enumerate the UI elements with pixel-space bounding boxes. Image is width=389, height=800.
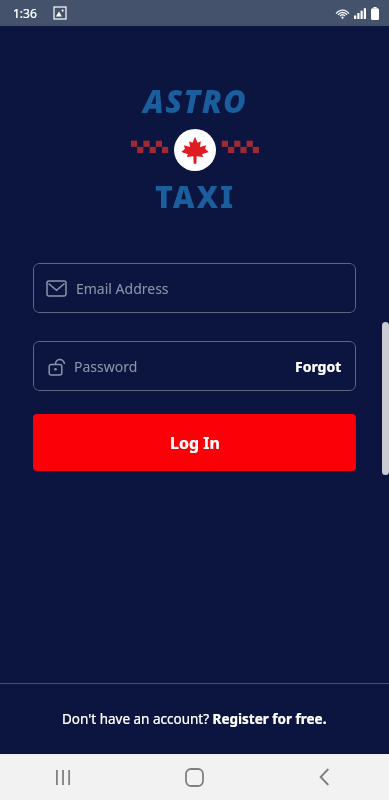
- button[interactable]: Recent apps: [0, 754, 129, 800]
- button[interactable]: Don't have an account? Register for free…: [0, 684, 389, 754]
- staticText: Password: [74, 357, 138, 376]
- staticText: ASTRO: [143, 80, 248, 122]
- button[interactable]: Back: [259, 754, 389, 800]
- button[interactable]: Forgot: [295, 357, 342, 376]
- button[interactable]: Home: [129, 754, 259, 800]
- staticText: TAXI: [155, 176, 236, 217]
- button[interactable]: Password: [33, 341, 356, 391]
- staticText: Email Address: [76, 279, 169, 298]
- staticText: Don't have an account? Register for free…: [62, 710, 327, 728]
- staticText: 1:36: [13, 5, 37, 21]
- staticText: Log In: [170, 432, 220, 454]
- button[interactable]: Log In: [33, 414, 356, 471]
- button[interactable]: Email Address: [33, 263, 356, 313]
